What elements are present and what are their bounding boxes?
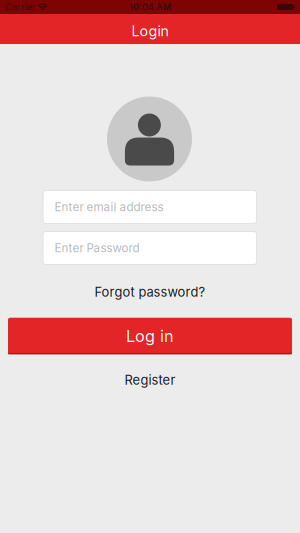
- staticText: Forgot password?: [94, 284, 205, 300]
- button[interactable]: Enter Password: [43, 231, 256, 264]
- button[interactable]: Forgot password?: [94, 284, 205, 300]
- button[interactable]: Register: [124, 372, 175, 388]
- staticText: Log in: [126, 326, 174, 346]
- staticText: Enter Password: [54, 241, 139, 255]
- staticText: Enter email address: [54, 200, 163, 214]
- staticText: Carrier: [5, 2, 35, 12]
- staticText: 10:04 AM: [129, 2, 171, 12]
- button[interactable]: Log in: [8, 318, 292, 354]
- button[interactable]: Enter email address: [43, 190, 256, 223]
- staticText: Login: [131, 22, 168, 40]
- staticText: Register: [124, 372, 175, 388]
